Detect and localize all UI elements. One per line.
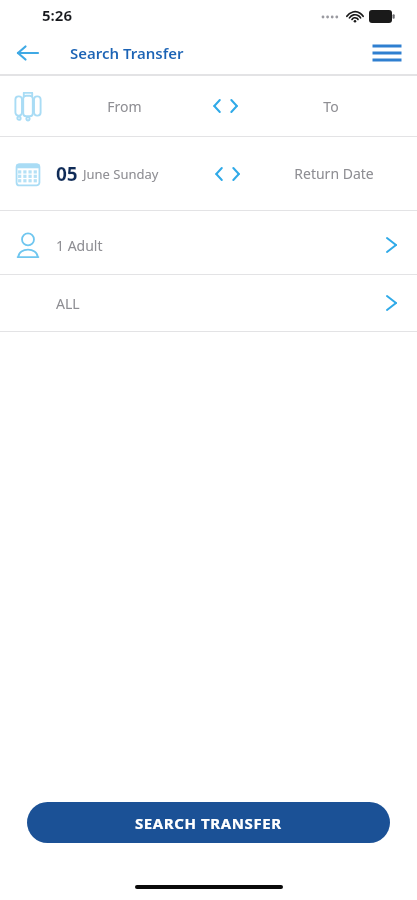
button[interactable]: Back (6, 32, 50, 74)
staticText: To (323, 97, 339, 116)
staticText: From (107, 97, 142, 116)
button[interactable]: 1 Adult (0, 216, 417, 274)
staticText: Return Date (294, 164, 374, 183)
button[interactable]: From (0, 76, 417, 136)
staticText: Search Transfer (70, 43, 184, 63)
staticText: June Sunday (83, 165, 159, 183)
staticText: ALL (56, 294, 385, 313)
button[interactable]: Menu (365, 32, 409, 74)
button[interactable]: SEARCH TRANSFER (27, 802, 390, 843)
button[interactable]: 05 (0, 137, 417, 210)
staticText: 1 Adult (56, 236, 385, 255)
button[interactable]: ALL (0, 275, 417, 331)
staticText: 05 (56, 161, 78, 187)
staticText: SEARCH TRANSFER (135, 813, 282, 833)
staticText: 5:26 (42, 5, 72, 25)
